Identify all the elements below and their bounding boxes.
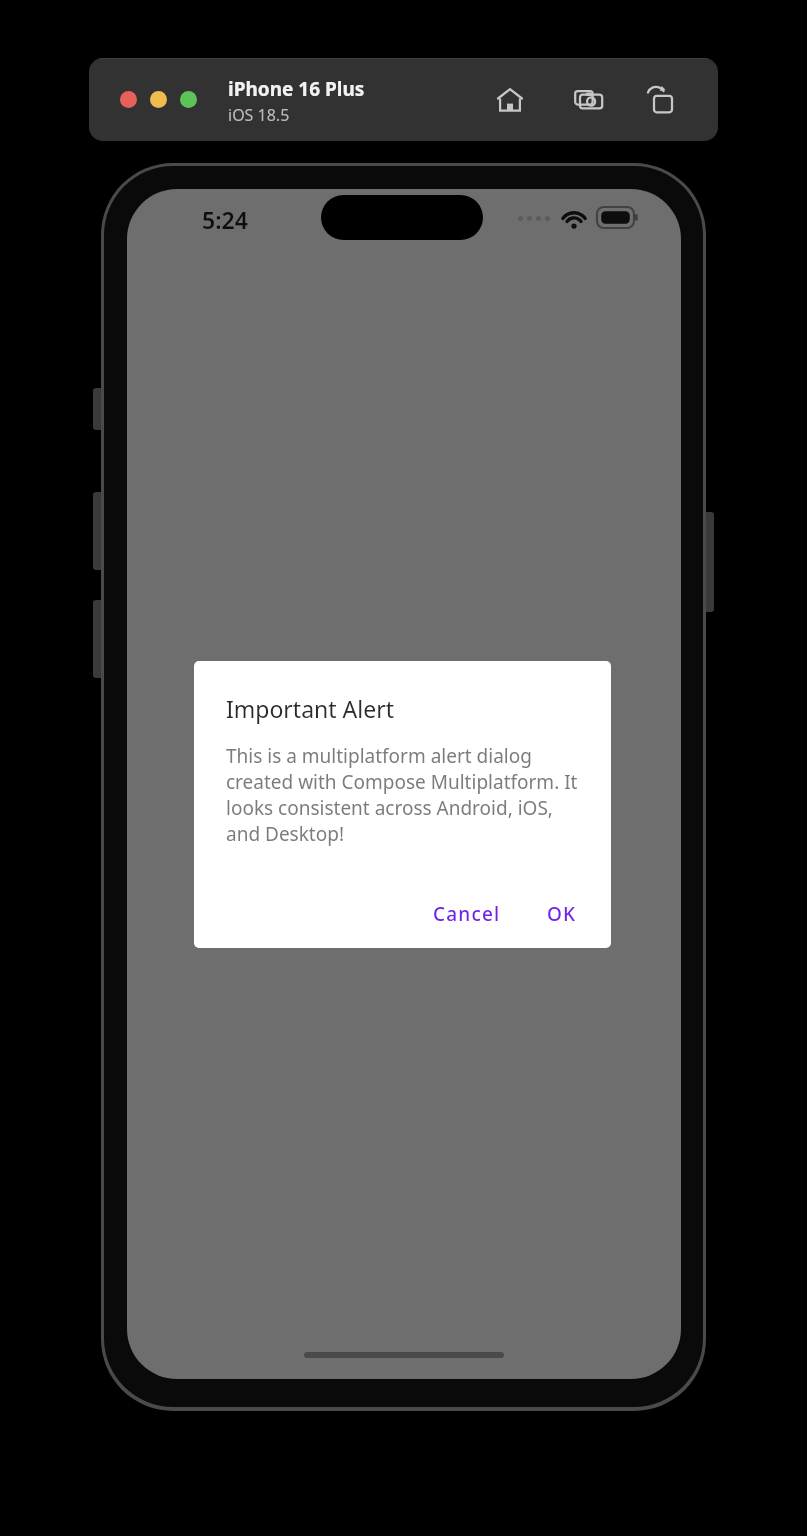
staticText: This is a multiplatform alert dialog cre… (226, 743, 585, 847)
button[interactable]: Power (704, 512, 714, 612)
button[interactable]: Volume up (93, 492, 103, 570)
staticText: Cancel (433, 901, 501, 927)
button[interactable]: Volume down (93, 600, 103, 678)
button[interactable]: Minimize (150, 91, 167, 108)
staticText: iPhone 16 Plus (228, 76, 365, 102)
button[interactable]: Screenshot (569, 80, 609, 120)
button[interactable]: Maximize (180, 91, 197, 108)
button[interactable]: Rotate (640, 80, 680, 120)
button[interactable]: Cancel (423, 893, 511, 935)
button[interactable]: Home (490, 80, 530, 120)
button[interactable]: OK (537, 893, 587, 935)
staticText: Important Alert (226, 693, 394, 724)
staticText: 5:24 (202, 204, 248, 235)
staticText: OK (547, 901, 577, 927)
button[interactable]: Action button (93, 388, 103, 430)
button[interactable]: Close (120, 91, 137, 108)
staticText: iOS 18.5 (228, 104, 290, 126)
